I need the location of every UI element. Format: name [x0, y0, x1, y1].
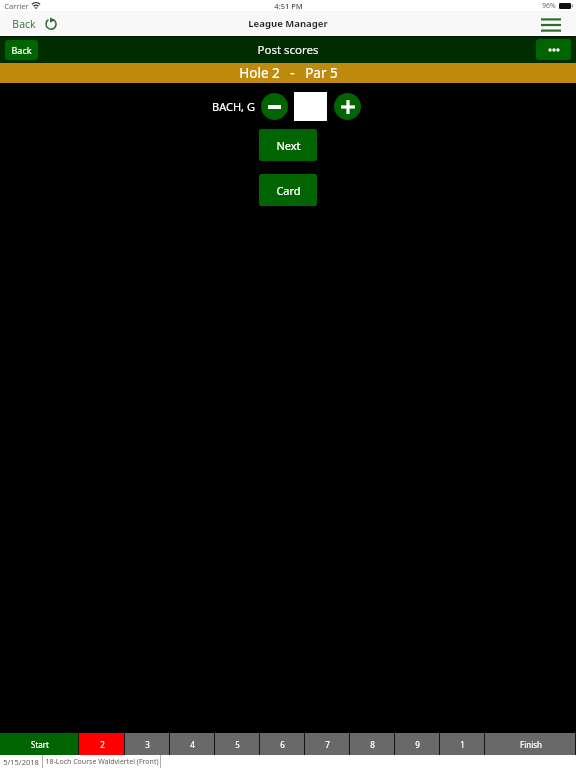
button[interactable]: Increase score: [334, 93, 361, 120]
staticText: Card: [276, 183, 301, 198]
staticText: Finish: [520, 739, 542, 750]
button[interactable]: Back: [0, 11, 41, 36]
staticText: Back: [11, 44, 32, 56]
button[interactable]: 5: [215, 733, 260, 755]
button[interactable]: Back: [5, 40, 38, 60]
button[interactable]: 3: [125, 733, 170, 755]
staticText: 96%: [542, 1, 556, 11]
staticText: 5/15/2018: [3, 757, 39, 767]
button[interactable]: Menu: [526, 11, 576, 36]
staticText: 9: [415, 739, 420, 750]
button[interactable]: Finish: [485, 733, 576, 755]
staticText: League Manager: [248, 17, 328, 30]
button[interactable]: Refresh: [41, 11, 61, 36]
button[interactable]: Start: [0, 733, 79, 755]
button[interactable]: 8: [350, 733, 395, 755]
staticText: 18-Loch Course Waldviertel (Front): [45, 757, 159, 767]
staticText: 1: [460, 739, 465, 750]
button[interactable]: 6: [260, 733, 305, 755]
staticText: 5: [235, 739, 240, 750]
staticText: Post scores: [257, 42, 319, 58]
staticText: 3: [145, 739, 150, 750]
button[interactable]: 9: [395, 733, 440, 755]
button[interactable]: More options: [536, 39, 571, 60]
staticText: 4:51 PM: [274, 1, 303, 11]
staticText: Hole 2 - Par 5: [239, 64, 338, 82]
staticText: Carrier: [4, 1, 29, 11]
staticText: 2: [100, 739, 105, 750]
button[interactable]: 1: [440, 733, 485, 755]
button[interactable]: Decrease score: [261, 93, 288, 120]
staticText: 6: [280, 739, 285, 750]
staticText: Start: [31, 739, 49, 750]
button[interactable]: Card: [259, 174, 317, 206]
staticText: Next: [276, 138, 301, 153]
button[interactable]: 2: [79, 733, 125, 755]
button[interactable]: 4: [170, 733, 215, 755]
staticText: 4: [190, 739, 195, 750]
button[interactable]: Next: [259, 129, 317, 161]
button[interactable]: 7: [305, 733, 350, 755]
staticText: BACH, G: [212, 99, 255, 114]
staticText: 7: [325, 739, 330, 750]
staticText: 8: [370, 739, 375, 750]
staticText: Back: [12, 17, 36, 31]
